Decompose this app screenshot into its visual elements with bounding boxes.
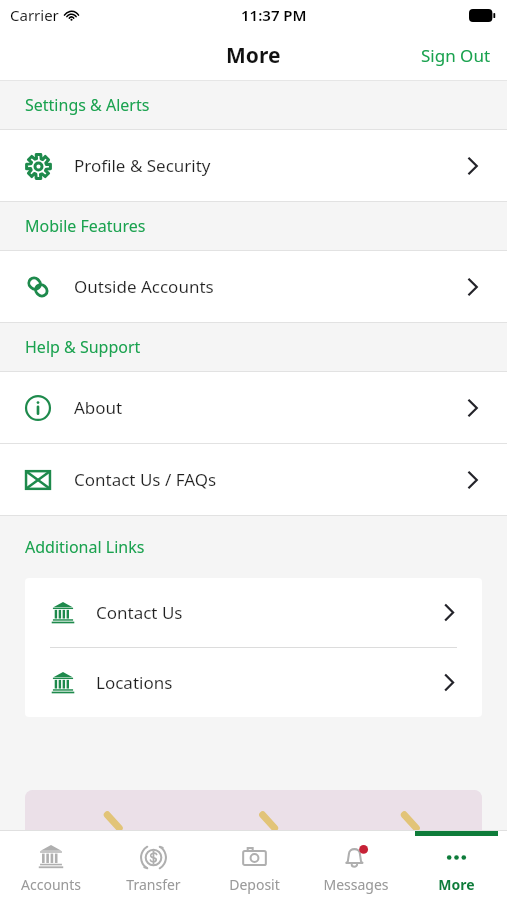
staticText: Additional Links bbox=[25, 536, 145, 558]
staticText: Accounts bbox=[21, 875, 81, 894]
button[interactable]: About bbox=[0, 372, 507, 443]
button[interactable]: Locations bbox=[25, 648, 482, 717]
button[interactable]: Contact Us / FAQs bbox=[0, 444, 507, 515]
button[interactable]: Deposit bbox=[204, 831, 305, 894]
staticText: Contact Us / FAQs bbox=[74, 468, 217, 491]
staticText: More bbox=[226, 41, 281, 70]
staticText: About bbox=[74, 396, 123, 419]
button[interactable]: More bbox=[406, 831, 507, 894]
button[interactable]: Outside Accounts bbox=[0, 251, 507, 322]
button[interactable]: Messages bbox=[305, 831, 406, 894]
staticText: Mobile Features bbox=[25, 215, 146, 237]
staticText: More bbox=[438, 875, 475, 894]
button[interactable]: Profile & Security bbox=[0, 130, 507, 201]
staticText: Help & Support bbox=[25, 336, 141, 358]
staticText: Carrier bbox=[10, 5, 59, 25]
staticText: Profile & Security bbox=[74, 154, 211, 177]
button[interactable]: Accounts bbox=[0, 831, 102, 894]
staticText: Contact Us bbox=[96, 601, 183, 624]
button[interactable]: Contact Us bbox=[25, 578, 482, 647]
staticText: Messages bbox=[323, 875, 389, 894]
button[interactable]: Transfer bbox=[102, 831, 204, 894]
staticText: Deposit bbox=[229, 875, 280, 894]
staticText: 11:37 PM bbox=[241, 5, 307, 25]
button[interactable]: Sign Out bbox=[405, 36, 507, 75]
staticText: Outside Accounts bbox=[74, 275, 214, 298]
staticText: Transfer bbox=[126, 875, 181, 894]
staticText: Locations bbox=[96, 671, 173, 694]
staticText: Sign Out bbox=[421, 44, 491, 67]
staticText: Settings & Alerts bbox=[25, 94, 150, 116]
